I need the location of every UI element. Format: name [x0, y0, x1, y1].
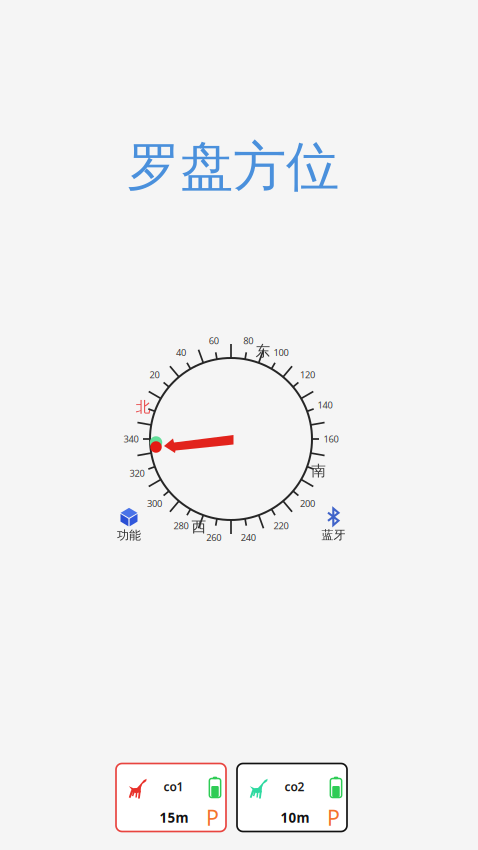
button[interactable]: co1: [116, 763, 226, 831]
button[interactable]: co2: [237, 763, 347, 831]
button[interactable]: 功能: [117, 507, 141, 543]
staticText: 320: [129, 467, 144, 479]
staticText: 40: [176, 346, 186, 359]
staticText: co2: [284, 778, 304, 794]
staticText: 10m: [280, 809, 309, 826]
staticText: 80: [243, 334, 253, 347]
staticText: 120: [300, 368, 315, 381]
staticText: 240: [241, 531, 256, 544]
staticText: P: [327, 803, 340, 832]
staticText: 60: [209, 334, 219, 347]
staticText: 200: [300, 497, 315, 509]
staticText: 20: [149, 368, 159, 381]
staticText: 220: [273, 519, 288, 532]
staticText: 260: [206, 531, 221, 544]
button[interactable]: 蓝牙: [321, 508, 345, 542]
staticText: 罗盘方位: [127, 134, 339, 200]
staticText: 北: [136, 398, 151, 416]
staticText: 蓝牙: [321, 528, 345, 542]
staticText: 西: [191, 518, 206, 536]
staticText: 140: [317, 399, 332, 411]
staticText: 340: [123, 433, 138, 445]
staticText: 280: [173, 519, 188, 532]
staticText: 160: [323, 433, 338, 445]
staticText: 功能: [117, 528, 141, 543]
staticText: 300: [147, 497, 162, 509]
staticText: 南: [311, 462, 326, 480]
staticText: 东: [255, 342, 270, 360]
staticText: P: [206, 803, 219, 832]
staticText: 15m: [159, 809, 188, 826]
staticText: 100: [273, 346, 288, 359]
staticText: co1: [163, 778, 183, 794]
